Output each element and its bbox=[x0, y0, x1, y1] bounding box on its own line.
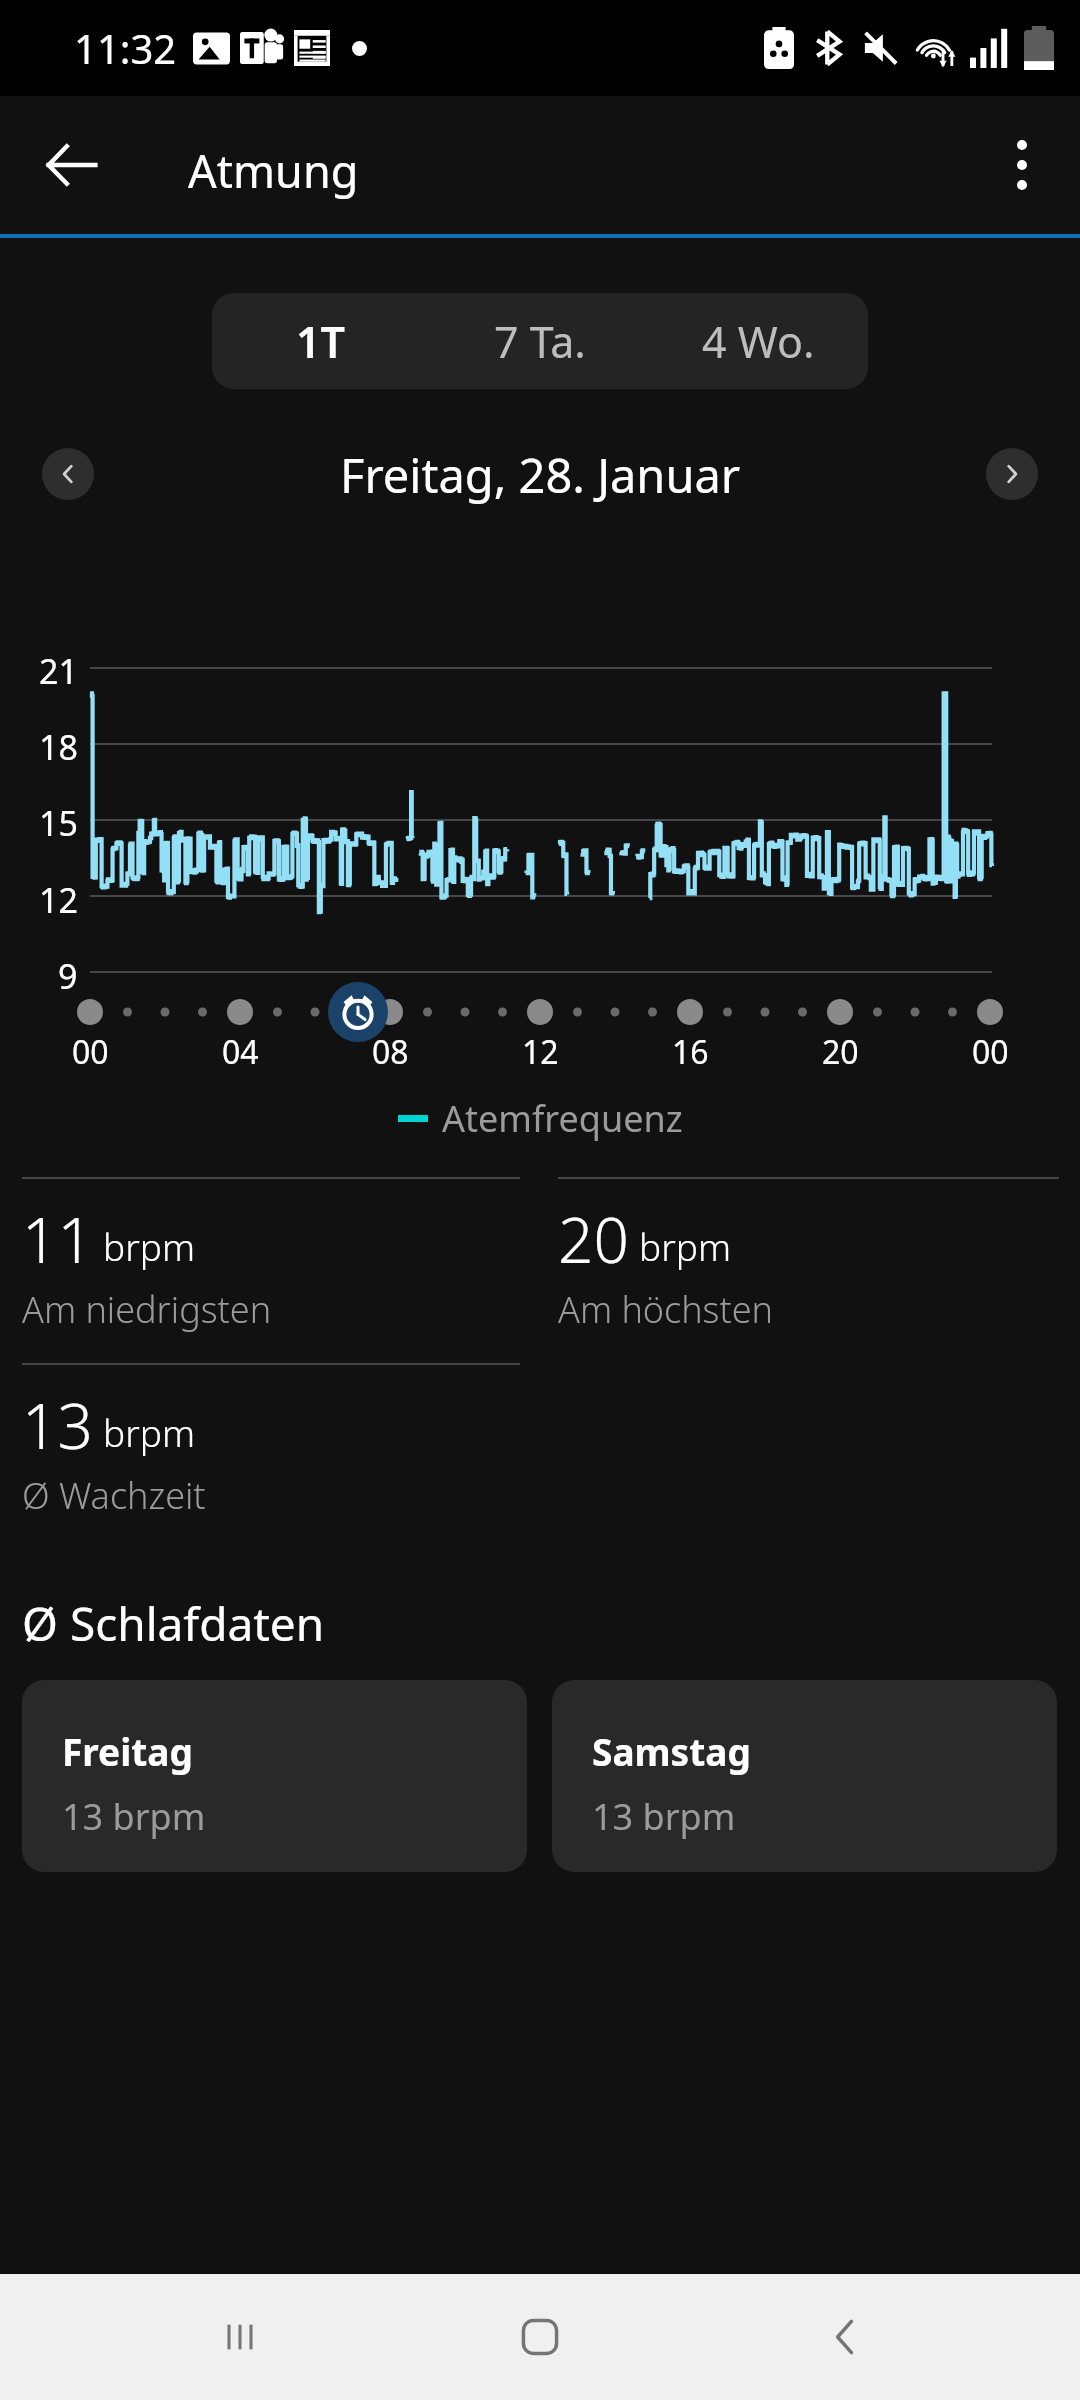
button[interactable]: Next day bbox=[986, 448, 1038, 500]
button[interactable]: Alarm bbox=[328, 982, 388, 1042]
button[interactable]: Back bbox=[765, 2274, 925, 2400]
staticText: 1T bbox=[296, 312, 346, 371]
staticText: 11 bbox=[22, 1197, 93, 1281]
staticText: 18 bbox=[39, 724, 78, 768]
button[interactable]: Previous day bbox=[42, 448, 94, 500]
button[interactable]: Samstag bbox=[552, 1680, 1057, 1872]
button[interactable]: Recent apps bbox=[160, 2274, 320, 2400]
staticText: 13 bbox=[22, 1383, 93, 1467]
staticText: 9 bbox=[58, 953, 78, 997]
button[interactable]: Home bbox=[460, 2274, 620, 2400]
staticText: brpm bbox=[103, 1407, 195, 1457]
staticText: Ø Wachzeit bbox=[22, 1471, 206, 1520]
staticText: 13 brpm bbox=[62, 1792, 206, 1841]
staticText: Freitag, 28. Januar bbox=[340, 443, 741, 507]
staticText: brpm bbox=[639, 1221, 731, 1271]
button[interactable]: Back bbox=[20, 96, 124, 234]
staticText: 08 bbox=[372, 1030, 409, 1072]
staticText: 7 Ta. bbox=[494, 312, 586, 371]
staticText: 20 bbox=[822, 1030, 859, 1072]
staticText: 4 Wo. bbox=[702, 312, 815, 371]
staticText: 12 bbox=[522, 1030, 559, 1072]
staticText: Freitag bbox=[62, 1726, 193, 1776]
staticText: Ø Schlafdaten bbox=[22, 1592, 325, 1655]
button[interactable]: Freitag bbox=[22, 1680, 527, 1872]
staticText: 16 bbox=[672, 1030, 709, 1072]
staticText: 20 bbox=[558, 1197, 629, 1281]
staticText: brpm bbox=[103, 1221, 195, 1271]
staticText: Atemfrequenz bbox=[442, 1094, 683, 1143]
staticText: 15 bbox=[39, 800, 78, 844]
button[interactable]: More options bbox=[970, 96, 1074, 234]
button[interactable]: 1T bbox=[212, 293, 430, 389]
staticText: 12 bbox=[39, 877, 78, 921]
staticText: 21 bbox=[39, 648, 78, 692]
button[interactable]: 7 Ta. bbox=[430, 293, 649, 389]
staticText: Samstag bbox=[592, 1726, 751, 1776]
staticText: Am niedrigsten bbox=[22, 1285, 272, 1334]
button[interactable]: 4 Wo. bbox=[649, 293, 868, 389]
staticText: 00 bbox=[972, 1030, 1009, 1072]
staticText: 11:32 bbox=[74, 21, 177, 75]
staticText: 13 brpm bbox=[592, 1792, 736, 1841]
staticText: Atmung bbox=[188, 140, 359, 201]
staticText: 00 bbox=[72, 1030, 109, 1072]
staticText: 04 bbox=[222, 1030, 259, 1072]
staticText: Am höchsten bbox=[558, 1285, 773, 1334]
